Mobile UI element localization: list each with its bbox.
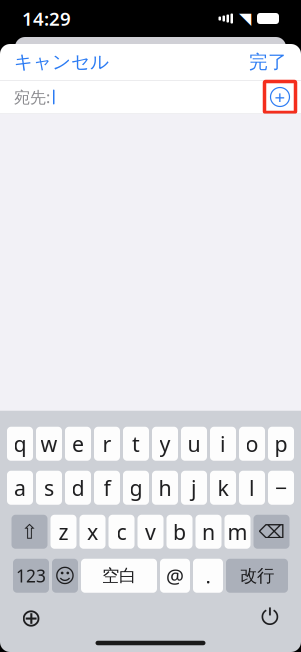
button[interactable]: −: [268, 471, 294, 505]
staticText: 空白: [102, 565, 136, 586]
staticText: q: [13, 430, 26, 458]
button[interactable]: h: [152, 471, 178, 505]
staticText: +: [274, 85, 285, 109]
button[interactable]: @: [160, 559, 190, 593]
button[interactable]: ⌫: [253, 515, 289, 549]
staticText: k: [217, 474, 228, 502]
staticText: ⇧: [21, 520, 38, 543]
button[interactable]: u: [181, 427, 207, 461]
button[interactable]: c: [108, 515, 134, 549]
button[interactable]: .: [193, 559, 223, 593]
button[interactable]: a: [7, 471, 33, 505]
staticText: v: [145, 518, 156, 546]
button[interactable]: k: [210, 471, 236, 505]
staticText: h: [158, 474, 171, 502]
button[interactable]: e: [65, 427, 91, 461]
button[interactable]: 完了: [235, 40, 301, 83]
button[interactable]: 音声入力: [253, 603, 287, 633]
staticText: b: [173, 518, 186, 546]
button[interactable]: キャンセル: [0, 40, 123, 83]
staticText: s: [44, 474, 54, 502]
staticText: キャンセル: [14, 50, 109, 73]
staticText: e: [72, 430, 84, 458]
button[interactable]: o: [239, 427, 265, 461]
staticText: 宛先:: [14, 86, 50, 108]
button[interactable]: v: [137, 515, 163, 549]
staticText: ⊕: [20, 603, 41, 632]
staticText: m: [227, 518, 247, 546]
staticText: −: [275, 474, 287, 502]
button[interactable]: m: [224, 515, 250, 549]
staticText: ☺: [54, 564, 75, 587]
staticText: 14:29: [22, 6, 71, 31]
staticText: p: [274, 430, 287, 458]
staticText: o: [245, 430, 258, 458]
staticText: y: [159, 430, 170, 458]
button[interactable]: ⇧: [11, 515, 47, 549]
button[interactable]: ☺: [52, 559, 78, 593]
button[interactable]: x: [79, 515, 105, 549]
staticText: u: [187, 430, 200, 458]
staticText: g: [129, 474, 142, 502]
staticText: j: [191, 474, 197, 502]
button[interactable]: q: [7, 427, 33, 461]
staticText: n: [202, 518, 215, 546]
button[interactable]: d: [65, 471, 91, 505]
staticText: ⏻: [261, 607, 279, 629]
button[interactable]: n: [195, 515, 221, 549]
staticText: .: [205, 562, 210, 589]
button[interactable]: i: [210, 427, 236, 461]
staticText: t: [132, 430, 140, 458]
staticText: i: [220, 430, 226, 458]
staticText: d: [71, 474, 84, 502]
staticText: ⌫: [258, 521, 284, 542]
button[interactable]: p: [268, 427, 294, 461]
staticText: @: [166, 562, 184, 589]
staticText: c: [116, 518, 126, 546]
button[interactable]: w: [36, 427, 62, 461]
staticText: 改行: [240, 565, 274, 586]
button[interactable]: r: [94, 427, 120, 461]
button[interactable]: j: [181, 471, 207, 505]
staticText: z: [58, 518, 68, 546]
button[interactable]: b: [166, 515, 192, 549]
button[interactable]: 連絡先を追加: [265, 82, 295, 112]
button[interactable]: l: [239, 471, 265, 505]
button[interactable]: f: [94, 471, 120, 505]
staticText: r: [102, 430, 111, 458]
staticText: f: [103, 474, 110, 502]
button[interactable]: 言語を切り替える: [14, 603, 48, 633]
staticText: ◥: [239, 9, 251, 28]
button[interactable]: y: [152, 427, 178, 461]
staticText: 完了: [249, 50, 287, 73]
button[interactable]: g: [123, 471, 149, 505]
staticText: 123: [16, 564, 46, 587]
staticText: l: [249, 474, 255, 502]
button[interactable]: s: [36, 471, 62, 505]
button[interactable]: 123: [13, 559, 49, 593]
button[interactable]: 空白: [81, 559, 157, 593]
button[interactable]: 改行: [226, 559, 288, 593]
staticText: a: [14, 474, 26, 502]
button[interactable]: z: [50, 515, 76, 549]
staticText: w: [40, 430, 57, 458]
button[interactable]: t: [123, 427, 149, 461]
staticText: x: [87, 518, 98, 546]
